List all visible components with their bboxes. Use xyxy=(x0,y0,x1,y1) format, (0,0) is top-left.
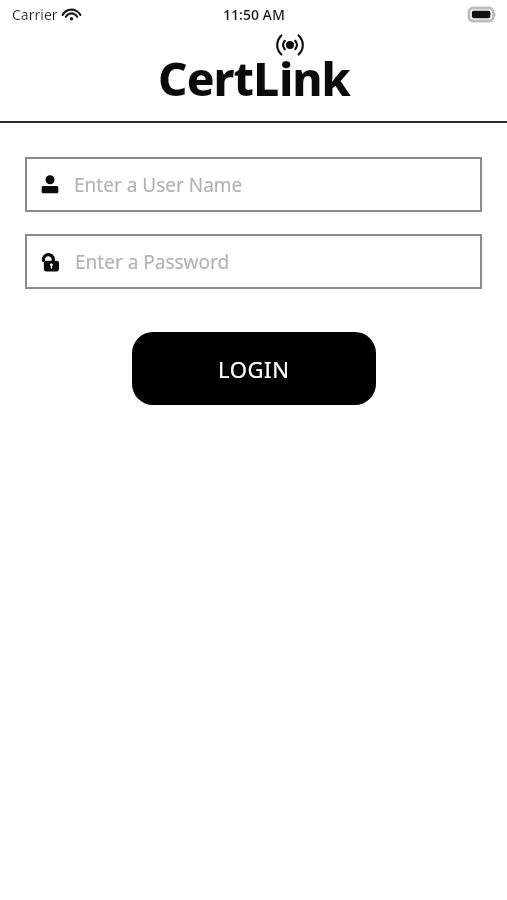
staticText: ink xyxy=(279,47,350,110)
staticText: Carrier xyxy=(12,5,58,24)
staticText: 11:50 AM xyxy=(223,5,285,24)
staticText: LOGIN xyxy=(218,354,290,384)
staticText: Enter a Password xyxy=(75,249,230,275)
staticText: Enter a User Name xyxy=(74,172,243,198)
button[interactable]: User name field xyxy=(25,157,482,212)
button[interactable]: Password field xyxy=(25,234,482,289)
button[interactable]: LOGIN xyxy=(132,332,376,405)
staticText: CertL xyxy=(158,47,279,110)
